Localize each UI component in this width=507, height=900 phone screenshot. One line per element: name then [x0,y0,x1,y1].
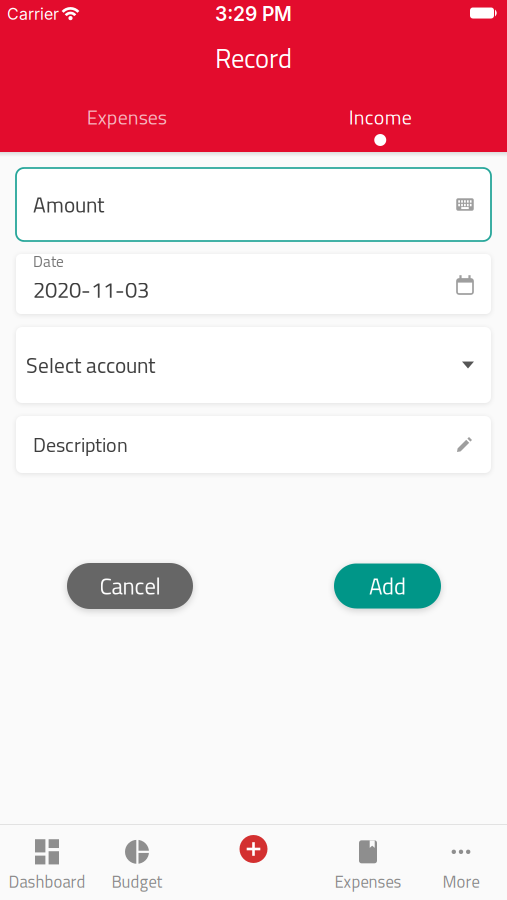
staticText: Carrier [7,4,59,24]
staticText: Expenses [334,869,401,894]
staticText: Amount [33,188,104,221]
staticText: Dashboard [8,869,85,894]
staticText: 2020-11-03 [33,273,149,306]
staticText: Record [215,38,292,78]
button[interactable]: Add [334,563,441,608]
staticText: More [442,869,479,894]
button[interactable]: Budget [97,838,177,896]
staticText: Date [33,250,64,273]
staticText: Expenses [87,102,167,132]
button[interactable]: Dashboard [0,838,94,896]
button[interactable]: Select account [16,327,491,403]
staticText: Description [33,429,128,460]
button[interactable]: Date [16,254,491,314]
button[interactable]: Income [254,93,507,141]
staticText: Budget [111,869,162,894]
button[interactable]: Cancel [67,563,193,609]
button[interactable]: Expenses [0,93,253,141]
staticText: Add [369,569,406,603]
staticText: 3:29 PM [215,2,292,26]
button[interactable]: Description [16,416,491,473]
button[interactable]: Add record [231,827,275,871]
button[interactable]: Expenses [323,838,413,896]
staticText: Select account [26,349,155,381]
button[interactable]: Amount [16,168,491,241]
button[interactable]: More [426,838,496,896]
staticText: Cancel [99,569,160,603]
staticText: Income [349,102,412,132]
